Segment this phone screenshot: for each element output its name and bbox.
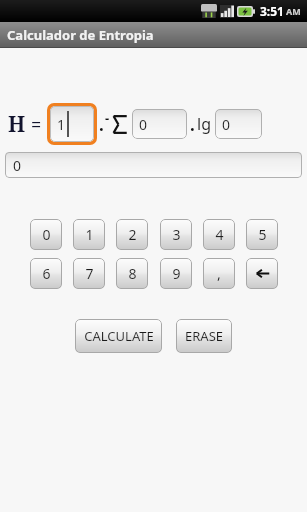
button[interactable]: 0 — [5, 152, 302, 178]
staticText: H — [8, 110, 26, 139]
button[interactable]: 0 — [132, 109, 187, 139]
button[interactable]: CALCULATE — [75, 319, 162, 353]
staticText: 0 — [139, 115, 148, 134]
staticText: - — [105, 109, 110, 127]
staticText: 2 — [128, 225, 137, 244]
button[interactable]: 9 — [160, 258, 192, 289]
button[interactable]: 1 — [50, 106, 94, 142]
staticText: 3 — [172, 225, 181, 244]
button[interactable]: , — [203, 258, 235, 289]
button[interactable]: 7 — [73, 258, 105, 289]
button[interactable]: 1 — [73, 219, 105, 250]
staticText: lg — [197, 113, 211, 135]
button[interactable]: 5 — [246, 219, 278, 250]
staticText: AM — [286, 5, 301, 17]
staticText: 9 — [172, 264, 181, 283]
button[interactable]: Backspace — [246, 258, 278, 289]
button[interactable]: 4 — [203, 219, 235, 250]
staticText: 8 — [128, 264, 137, 283]
button[interactable]: 0 — [30, 219, 62, 250]
staticText: 4 — [215, 225, 224, 244]
staticText: . — [190, 113, 195, 136]
staticText: , — [217, 264, 221, 283]
staticText: 7 — [85, 264, 94, 283]
staticText: 0 — [42, 225, 51, 244]
staticText: ERASE — [185, 327, 223, 345]
staticText: 0 — [222, 115, 231, 134]
staticText: 0 — [13, 156, 22, 175]
staticText: CALCULATE — [84, 327, 154, 345]
staticText: 1 — [85, 225, 94, 244]
button[interactable]: 6 — [30, 258, 62, 289]
staticText: . — [99, 113, 104, 136]
button[interactable]: 0 — [215, 109, 262, 139]
button[interactable]: ERASE — [176, 319, 232, 353]
staticText: 6 — [42, 264, 51, 283]
staticText: 5 — [258, 225, 267, 244]
button[interactable]: 2 — [116, 219, 148, 250]
staticText: = — [31, 112, 42, 137]
button[interactable]: 3 — [160, 219, 192, 250]
staticText: Calculador de Entropia — [7, 26, 154, 44]
button[interactable]: 8 — [116, 258, 148, 289]
staticText: 3:51 — [260, 3, 284, 19]
staticText: 1 — [57, 115, 66, 134]
